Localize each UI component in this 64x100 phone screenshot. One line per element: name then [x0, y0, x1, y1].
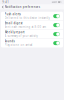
staticText: Push alerts — [5, 12, 21, 16]
staticText: Weekly report — [5, 30, 25, 34]
staticText: Notification preferences — [5, 5, 40, 9]
button[interactable]: Sounds — [1, 39, 63, 47]
button[interactable]: Push alerts — [1, 12, 63, 20]
staticText: Delivered to this device instantly — [5, 16, 50, 20]
staticText: Email digest — [5, 21, 23, 25]
staticText: Sent each morning at 8:00 am — [5, 25, 46, 29]
staticText: A summary of your activity — [5, 34, 38, 38]
button[interactable]: Back — [0, 5, 5, 9]
staticText: Play a tone on arrival — [5, 43, 33, 47]
staticText: 9:41 — [2, 0, 9, 4]
staticText: Sounds — [5, 39, 15, 43]
button[interactable]: Weekly report — [1, 30, 63, 38]
button[interactable]: Email digest — [1, 21, 63, 29]
